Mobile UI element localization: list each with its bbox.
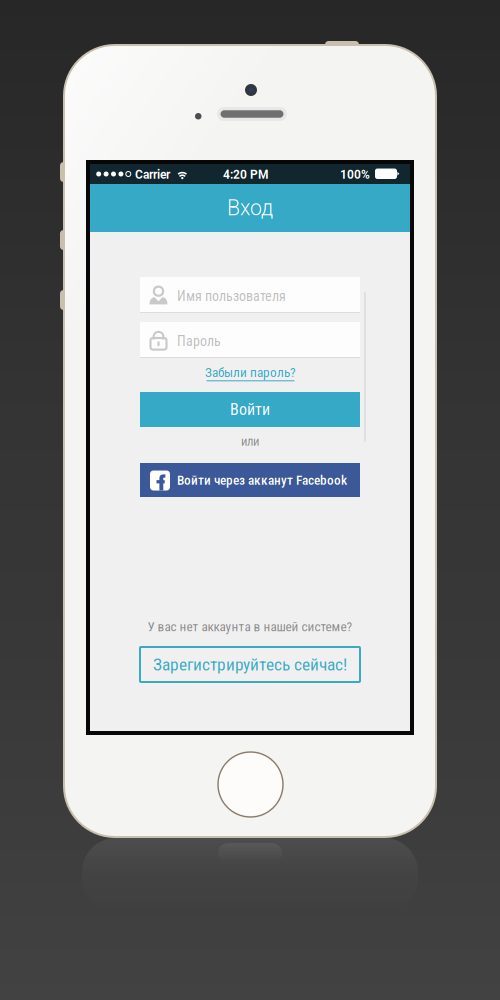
- staticText: Забыли пароль?: [205, 365, 296, 380]
- button[interactable]: Зарегистрируйтесь сейчас!: [140, 647, 360, 682]
- button[interactable]: Пароль: [140, 322, 360, 358]
- staticText: У вас нет аккаунта в нашей системе?: [147, 619, 352, 635]
- staticText: Войти: [230, 400, 270, 419]
- button[interactable]: Имя пользователя: [140, 277, 360, 313]
- staticText: 4:20 PM: [223, 167, 269, 182]
- staticText: Вход: [227, 195, 273, 220]
- staticText: Пароль: [177, 333, 221, 349]
- button[interactable]: Забыли пароль?: [140, 365, 360, 381]
- button[interactable]: Войти: [140, 392, 360, 427]
- staticText: Зарегистрируйтесь сейчас!: [153, 654, 347, 675]
- staticText: или: [241, 434, 259, 449]
- staticText: Войти через акканут Facebook: [177, 472, 347, 488]
- staticText: Имя пользователя: [177, 288, 286, 304]
- button[interactable]: Войти через акканут Facebook: [140, 463, 360, 497]
- staticText: Carrier: [135, 167, 170, 182]
- staticText: 100%: [340, 167, 370, 182]
